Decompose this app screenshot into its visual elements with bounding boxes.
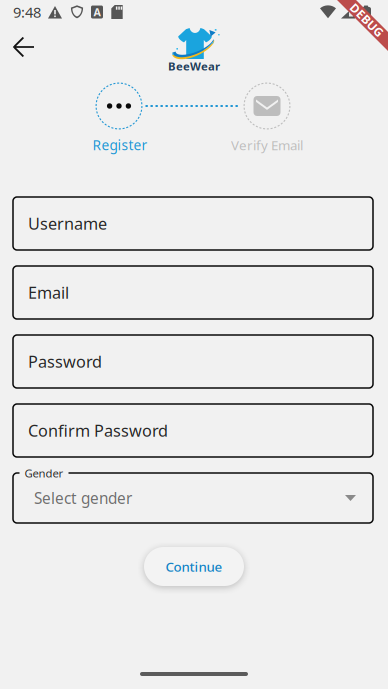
button[interactable]: Password [13,335,373,388]
staticText: Confirm Password [28,419,168,442]
staticText: Select gender [34,488,132,508]
staticText: Verify Email [231,136,303,154]
staticText: Password [28,350,102,373]
staticText: Email [28,281,69,304]
staticText: A [93,5,100,19]
staticText: DEBUG [346,12,388,28]
button[interactable]: Back [2,25,46,69]
staticText: Username [28,212,107,235]
staticText: Continue [165,557,222,576]
staticText: 9:48 [13,2,41,22]
staticText: Gender [24,465,63,481]
button[interactable]: Select gender [13,473,373,523]
staticText: Register [92,136,147,154]
staticText: BeeWear [168,58,220,74]
button[interactable]: Continue [144,547,244,586]
button[interactable]: Email [13,266,373,319]
button[interactable]: Username [13,197,373,250]
button[interactable]: Confirm Password [13,404,373,457]
